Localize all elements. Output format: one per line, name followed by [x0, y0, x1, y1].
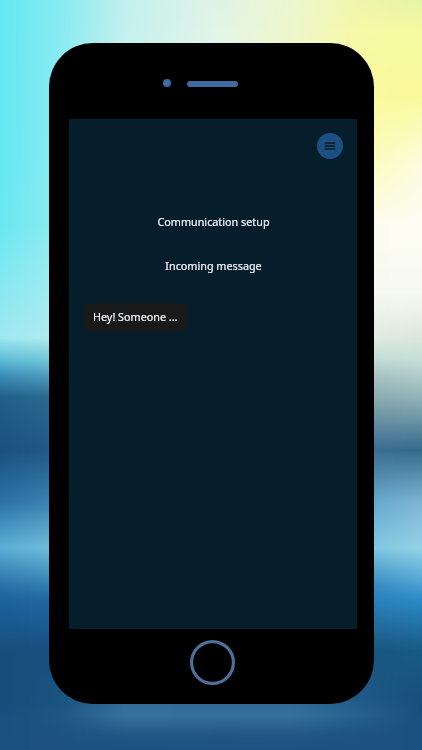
staticText: Communication setup — [157, 214, 270, 229]
button[interactable]: Hey! Someone ... — [84, 303, 187, 332]
staticText: Incoming message — [165, 258, 262, 273]
staticText: Hey! Someone ... — [93, 309, 178, 324]
button[interactable]: Menu — [317, 133, 343, 159]
